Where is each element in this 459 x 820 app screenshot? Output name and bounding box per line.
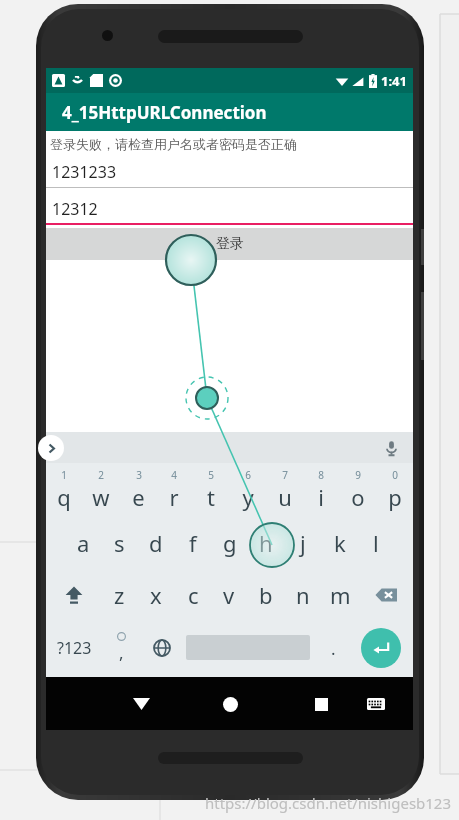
button[interactable]: Expand suggestions — [38, 435, 64, 461]
button[interactable]: g — [212, 517, 248, 569]
staticText: 3 — [136, 468, 142, 482]
button[interactable]: a — [65, 517, 101, 569]
staticText: s — [114, 528, 125, 558]
staticText: u — [278, 482, 292, 512]
button[interactable]: z — [101, 569, 137, 621]
button[interactable]: f — [175, 517, 211, 569]
staticText: h — [259, 528, 273, 558]
staticText: 4_15HttpURLConnection — [62, 101, 267, 124]
staticText: f — [189, 528, 197, 558]
staticText: g — [223, 528, 237, 558]
staticText: w — [92, 482, 110, 512]
staticText: 登录失败，请检查用户名或者密码是否正确 — [50, 136, 297, 152]
button[interactable]: 2 — [83, 463, 119, 517]
button[interactable]: Recent apps — [304, 687, 338, 721]
button[interactable]: 0 — [377, 463, 413, 517]
button[interactable]: 8 — [303, 463, 339, 517]
button[interactable]: 1 — [46, 463, 82, 517]
staticText: v — [223, 580, 235, 610]
staticText: 4 — [171, 468, 177, 482]
staticText: j — [300, 528, 306, 558]
staticText: b — [259, 580, 273, 610]
button[interactable]: Period — [318, 621, 348, 675]
button[interactable]: d — [138, 517, 174, 569]
button[interactable]: Switch keyboard — [361, 689, 391, 719]
staticText: 12312 — [52, 198, 98, 220]
button[interactable]: 3 — [120, 463, 156, 517]
staticText: e — [132, 482, 145, 512]
button[interactable]: m — [322, 569, 358, 621]
staticText: z — [114, 580, 125, 610]
staticText: o — [351, 482, 365, 512]
staticText: 7 — [282, 468, 288, 482]
staticText: , — [119, 641, 124, 664]
button[interactable]: b — [248, 569, 284, 621]
button[interactable]: Voice input — [379, 436, 403, 460]
button[interactable]: 7 — [267, 463, 303, 517]
button[interactable]: Enter — [361, 628, 401, 668]
staticText: d — [149, 528, 163, 558]
button[interactable]: h — [248, 517, 284, 569]
staticText: i — [318, 482, 324, 512]
button[interactable]: Change language — [144, 621, 180, 675]
button[interactable]: l — [358, 517, 394, 569]
staticText: 9 — [355, 468, 361, 482]
staticText: p — [388, 482, 402, 512]
button[interactable]: 9 — [340, 463, 376, 517]
staticText: r — [169, 482, 179, 512]
staticText: 8 — [318, 468, 324, 482]
button[interactable]: Backspace — [364, 569, 408, 621]
staticText: n — [296, 580, 310, 610]
button[interactable]: 5 — [193, 463, 229, 517]
button[interactable]: Shift — [52, 569, 96, 621]
button[interactable]: v — [211, 569, 247, 621]
staticText: c — [188, 580, 199, 610]
button[interactable]: s — [101, 517, 137, 569]
button[interactable]: 12312 — [46, 193, 413, 225]
staticText: y — [242, 482, 254, 512]
staticText: 6 — [245, 468, 251, 482]
staticText: 2 — [98, 468, 104, 482]
button[interactable]: c — [175, 569, 211, 621]
staticText: k — [334, 528, 346, 558]
button[interactable]: 登录 — [46, 228, 413, 260]
staticText: 1:41 — [381, 72, 407, 90]
staticText: https://blog.csdn.net/nishigesb123 — [205, 793, 452, 813]
button[interactable]: Comma — [104, 621, 138, 675]
staticText: t — [207, 482, 215, 512]
button[interactable]: x — [138, 569, 174, 621]
button[interactable]: k — [322, 517, 358, 569]
button[interactable]: 4 — [156, 463, 192, 517]
staticText: 登录 — [216, 235, 244, 253]
staticText: . — [331, 637, 336, 660]
staticText: x — [150, 580, 162, 610]
button[interactable]: Back — [124, 687, 158, 721]
button[interactable]: Home — [213, 687, 247, 721]
button[interactable]: 6 — [230, 463, 266, 517]
staticText: l — [373, 528, 379, 558]
staticText: m — [330, 580, 351, 610]
button[interactable]: 1231233 — [46, 156, 413, 188]
staticText: 1 — [61, 468, 67, 482]
staticText: 5 — [208, 468, 214, 482]
button[interactable]: n — [285, 569, 321, 621]
staticText: q — [57, 482, 71, 512]
staticText: 0 — [392, 468, 398, 482]
staticText: 1231233 — [52, 161, 117, 183]
staticText: ?123 — [57, 637, 92, 659]
staticText: a — [77, 528, 90, 558]
button[interactable]: j — [285, 517, 321, 569]
button[interactable]: ?123 — [50, 621, 98, 675]
